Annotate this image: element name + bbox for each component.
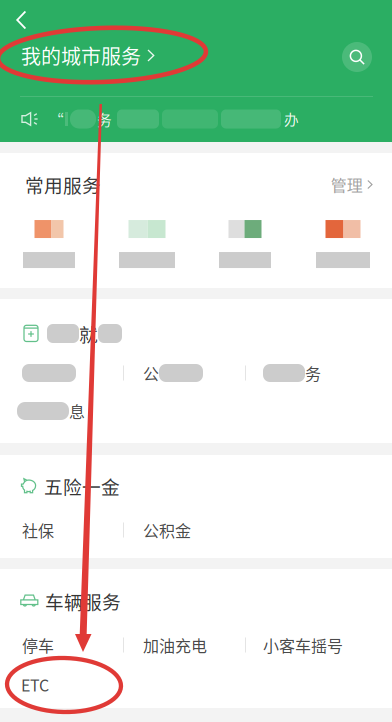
button[interactable]: 务 — [246, 362, 376, 384]
staticText: 社保 — [22, 518, 54, 542]
staticText: 小客车摇号 — [263, 633, 343, 657]
staticText: 常用服务 — [25, 171, 101, 198]
button[interactable]: 我的城市服务 — [0, 37, 167, 74]
button[interactable]: 小客车摇号 — [246, 634, 376, 656]
staticText: 停车 — [22, 633, 54, 657]
staticText: 息 — [69, 399, 85, 423]
button[interactable]: Back — [0, 5, 50, 35]
staticText: 就 — [79, 320, 98, 347]
staticText: 加油充电 — [143, 633, 207, 657]
button[interactable]: Search — [336, 36, 378, 78]
button[interactable]: ETC — [0, 668, 63, 701]
staticText: ETC — [21, 673, 49, 696]
staticText: 务 — [305, 361, 321, 385]
button[interactable]: 公 — [124, 362, 245, 384]
staticText: 办 — [284, 108, 299, 130]
button[interactable]: 公积金 — [124, 519, 245, 541]
staticText: 五险一金 — [44, 472, 120, 499]
button[interactable]: 管理 — [331, 173, 373, 196]
button[interactable]: 加油充电 — [124, 634, 245, 656]
button[interactable]: 停车 — [0, 634, 123, 656]
button[interactable]: 社保 — [0, 519, 123, 541]
staticText: 公 — [143, 361, 159, 385]
staticText: “ — [49, 108, 64, 130]
button[interactable]: “ — [0, 105, 392, 133]
staticText: 车辆服务 — [45, 587, 121, 614]
staticText: 公积金 — [143, 518, 191, 542]
button[interactable] — [0, 362, 123, 384]
staticText: 我的城市服务 — [21, 41, 141, 70]
staticText: 管理 — [331, 173, 363, 196]
staticText: 务 — [97, 108, 112, 130]
